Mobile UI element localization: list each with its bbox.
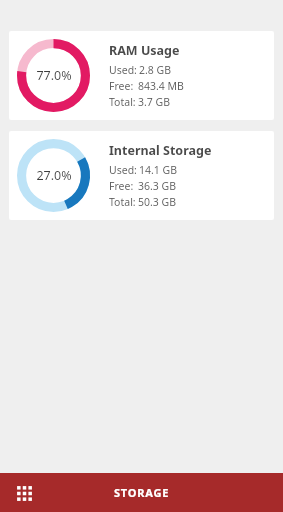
staticText: Free: (109, 179, 136, 193)
button[interactable]: STORAGE (98, 479, 186, 506)
staticText: Free: (109, 79, 136, 93)
staticText: 77.0% (36, 67, 72, 84)
staticText: 27.0% (36, 167, 72, 184)
staticText: 3.7 GB (138, 95, 171, 109)
staticText: STORAGE (114, 485, 170, 500)
staticText: 843.4 MB (138, 79, 184, 93)
staticText: 14.1 GB (139, 163, 178, 177)
staticText: Used: (109, 163, 137, 177)
staticText: Used: (109, 63, 137, 77)
button[interactable]: 77.0% (9, 31, 274, 120)
staticText: 36.3 GB (138, 179, 177, 193)
button[interactable]: 27.0% (9, 131, 274, 220)
staticText: Internal Storage (109, 142, 212, 159)
button[interactable]: Apps (8, 477, 40, 509)
staticText: 50.3 GB (138, 195, 177, 209)
staticText: Total: (109, 195, 136, 209)
staticText: 2.8 GB (139, 63, 172, 77)
staticText: Total: (109, 95, 136, 109)
staticText: RAM Usage (109, 42, 180, 59)
